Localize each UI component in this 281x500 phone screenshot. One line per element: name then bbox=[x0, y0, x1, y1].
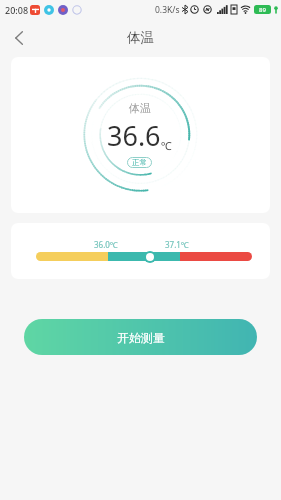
staticText: 36.0℃ bbox=[94, 239, 118, 250]
staticText: 37.1℃ bbox=[165, 239, 189, 250]
staticText: ℃ bbox=[161, 138, 172, 153]
staticText: 89 bbox=[259, 6, 266, 14]
staticText: 体温 bbox=[127, 29, 154, 46]
button[interactable]: Back bbox=[0, 19, 37, 56]
staticText: 0.3K/s bbox=[155, 4, 180, 16]
staticText: 36.6 bbox=[107, 117, 161, 154]
button[interactable]: 开始测量 bbox=[24, 319, 257, 355]
staticText: 20:08 bbox=[5, 4, 29, 16]
staticText: 体温 bbox=[129, 101, 151, 115]
staticText: 开始测量 bbox=[117, 330, 165, 345]
staticText: 正常 bbox=[132, 158, 147, 167]
